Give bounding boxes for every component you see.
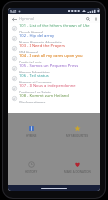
staticText: 104 - I cast all my cares upon you <box>19 53 83 59</box>
staticText: Nuevo Himnario Adventista <box>19 40 62 43</box>
staticText: 101 - List of the hthers thrown of Ute <box>19 23 90 29</box>
staticText: 107 - Il Nous a independonne <box>19 83 76 89</box>
staticText: MY FAVOURITES <box>66 134 89 138</box>
button[interactable]: My favourites <box>54 113 100 149</box>
staticText: HYMNS <box>26 134 37 138</box>
button[interactable]: Make a donation <box>54 149 100 185</box>
staticText: Church Hymnal <box>19 30 43 33</box>
button[interactable]: 101 - List of the hthers thrown of Ute <box>8 23 100 33</box>
staticText: 103 - I Need the Prayers <box>19 43 66 49</box>
button[interactable]: 102 - Hip del arroy <box>8 33 100 43</box>
staticText: Cantiques Les Saints <box>19 90 51 93</box>
staticText: Himnos Adventistas <box>19 70 50 73</box>
staticText: 105 - Somos un Pequeno Press <box>19 63 79 69</box>
staticText: 9:41 <box>10 9 17 14</box>
staticText: 106 - Teil status <box>19 73 49 79</box>
staticText: SDA Hymnal <box>19 50 39 53</box>
staticText: Glaubensstimme <box>19 100 46 103</box>
button[interactable]: Hymns <box>8 113 100 185</box>
staticText: Cantic te Louis <box>19 60 42 63</box>
button[interactable]: Search <box>84 15 92 23</box>
button[interactable]: 105 - Somos un Pequeno Press <box>8 63 100 73</box>
button[interactable]: More options <box>92 15 99 22</box>
button[interactable]: 104 - I cast all my cares upon you <box>8 53 100 63</box>
staticText: Hymnal <box>19 16 35 22</box>
staticText: MAKE A DONATION <box>64 170 91 174</box>
staticText: 102 - Hip del arroy <box>19 33 55 39</box>
staticText: Hymnes et Louanges <box>19 80 52 83</box>
button[interactable]: 106 - Teil status <box>8 73 100 83</box>
button[interactable]: 107 - Il Nous a independonne <box>8 83 100 93</box>
staticText: HISTORY <box>25 170 38 174</box>
button[interactable]: 103 - I Need the Prayers <box>8 43 100 53</box>
button[interactable]: Back <box>10 15 18 23</box>
staticText: 108 - Kommt zum Heiland <box>19 93 69 99</box>
button[interactable]: Hymns <box>8 113 54 149</box>
button[interactable]: 108 - Kommt zum Heiland <box>8 93 100 103</box>
